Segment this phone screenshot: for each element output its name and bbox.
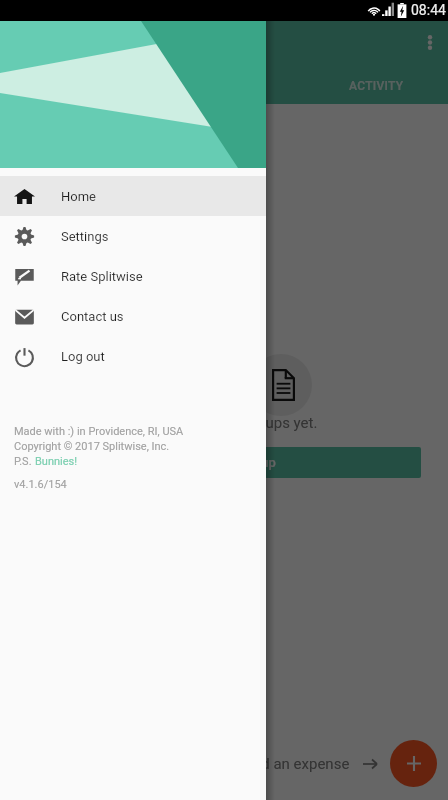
staticText: Add an expense — [243, 755, 350, 773]
staticText: Rate Splitwise — [61, 269, 143, 284]
button[interactable]: More options — [412, 24, 448, 60]
button[interactable]: Contact us — [0, 296, 266, 336]
staticText: Settings — [61, 229, 109, 244]
button[interactable]: ACTIVITY — [302, 66, 448, 106]
button[interactable]: Log out — [0, 336, 266, 376]
staticText: Made with :) in Providence, RI, USA — [14, 425, 184, 438]
staticText: v4.1.6/154 — [14, 478, 67, 491]
button[interactable]: Settings — [0, 216, 266, 256]
staticText: 08:44 — [411, 2, 446, 18]
staticText: Log out — [61, 349, 105, 364]
staticText: P.S. — [14, 455, 35, 468]
staticText: Contact us — [61, 309, 124, 324]
button[interactable]: Add expense — [390, 740, 437, 787]
button[interactable]: Start a new group — [27, 447, 421, 478]
button[interactable]: GROUPS — [3, 66, 153, 106]
button[interactable]: Home — [0, 176, 266, 216]
staticText: ACTIVITY — [349, 79, 404, 93]
staticText: Copyright © 2017 Splitwise, Inc. — [14, 440, 170, 453]
button[interactable]: FRIENDS — [153, 66, 302, 106]
button[interactable]: Rate Splitwise — [0, 256, 266, 296]
button[interactable]: Bunnies! — [35, 455, 78, 468]
staticText: Home — [61, 189, 96, 204]
staticText: You're not in any groups yet. — [0, 414, 448, 432]
staticText: Start a new group — [173, 455, 276, 470]
